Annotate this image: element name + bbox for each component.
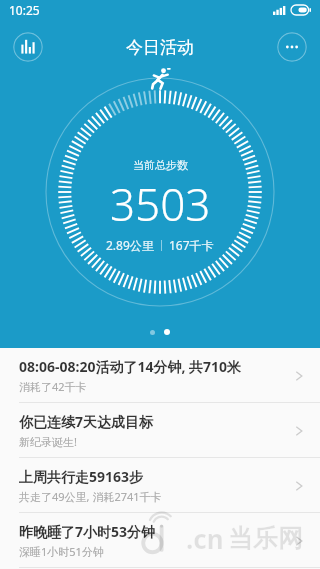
staticText: 08:06-08:20活动了14分钟, 共710米 bbox=[19, 357, 242, 376]
staticText: 10:25 bbox=[9, 2, 40, 18]
staticText: 今日活动 bbox=[126, 37, 194, 58]
button[interactable]: 昨晚睡了7小时53分钟 bbox=[0, 513, 320, 568]
staticText: 3503 bbox=[110, 174, 211, 234]
staticText: 2.89公里 bbox=[106, 237, 154, 253]
staticText: .cn bbox=[186, 521, 224, 556]
button[interactable]: 你已连续7天达成目标 bbox=[0, 403, 320, 458]
button[interactable]: Page 2 bbox=[164, 329, 170, 335]
staticText: 上周共行走59163步 bbox=[19, 467, 144, 486]
button[interactable]: Page 1 bbox=[150, 330, 155, 335]
staticText: 昨晚睡了7小时53分钟 bbox=[19, 522, 156, 541]
staticText: 深睡1小时51分钟 bbox=[19, 544, 104, 559]
staticText: 当前总步数 bbox=[133, 158, 188, 172]
button[interactable]: More options bbox=[277, 32, 307, 62]
staticText: 共走了49公里, 消耗2741千卡 bbox=[19, 489, 162, 504]
staticText: 167千卡 bbox=[169, 237, 214, 253]
button[interactable]: 08:06-08:20活动了14分钟, 共710米 bbox=[0, 348, 320, 403]
staticText: 你已连续7天达成目标 bbox=[19, 412, 154, 431]
staticText: 消耗了42千卡 bbox=[19, 379, 87, 394]
button[interactable]: Statistics bbox=[13, 32, 43, 62]
button[interactable]: 上周共行走59163步 bbox=[0, 458, 320, 513]
staticText: 当乐网 bbox=[228, 523, 303, 554]
staticText: 新纪录诞生! bbox=[19, 434, 77, 449]
